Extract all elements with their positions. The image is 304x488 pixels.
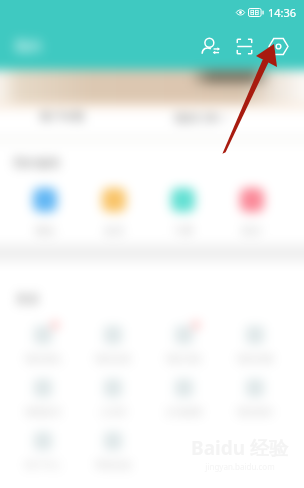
staticText: 我的 [14,38,42,56]
button[interactable]: 会员 [79,188,148,246]
button[interactable]: 用户中心 [8,432,78,485]
button[interactable]: 我的消息 [148,326,219,379]
button[interactable]: 帮助反馈 [78,432,148,485]
staticText: Baidu 经验 [191,435,288,461]
staticText: 14:36 [268,5,297,20]
staticText: jingyan.baidu.com [205,461,275,472]
staticText: 我的服务 [13,155,61,170]
button[interactable]: 我的钱包 [8,326,78,379]
button[interactable]: 积分 [217,188,286,246]
button[interactable] [219,432,290,485]
button[interactable]: 我的订单 > [174,108,230,126]
button[interactable]: 云空间 [78,379,148,432]
button[interactable]: 钱包 [10,188,79,246]
button[interactable]: Scan QR code [229,31,259,61]
button[interactable]: 智能家居 [8,379,78,432]
button[interactable]: Settings [263,31,293,61]
button[interactable]: 我的设置 [78,326,148,379]
button[interactable]: 卡券 [148,188,217,246]
button[interactable]: 我的收藏 [219,326,290,379]
button[interactable]: 账户余额 0.00 [40,108,102,126]
staticText: 我的订单 > [174,110,228,125]
staticText: 更多 [16,291,40,306]
button[interactable]: 运动健康 [148,379,219,432]
button[interactable]: Add friend [195,31,225,61]
staticText: 账户余额 0.00 [40,108,102,126]
button[interactable]: 我的服务 [219,379,290,432]
